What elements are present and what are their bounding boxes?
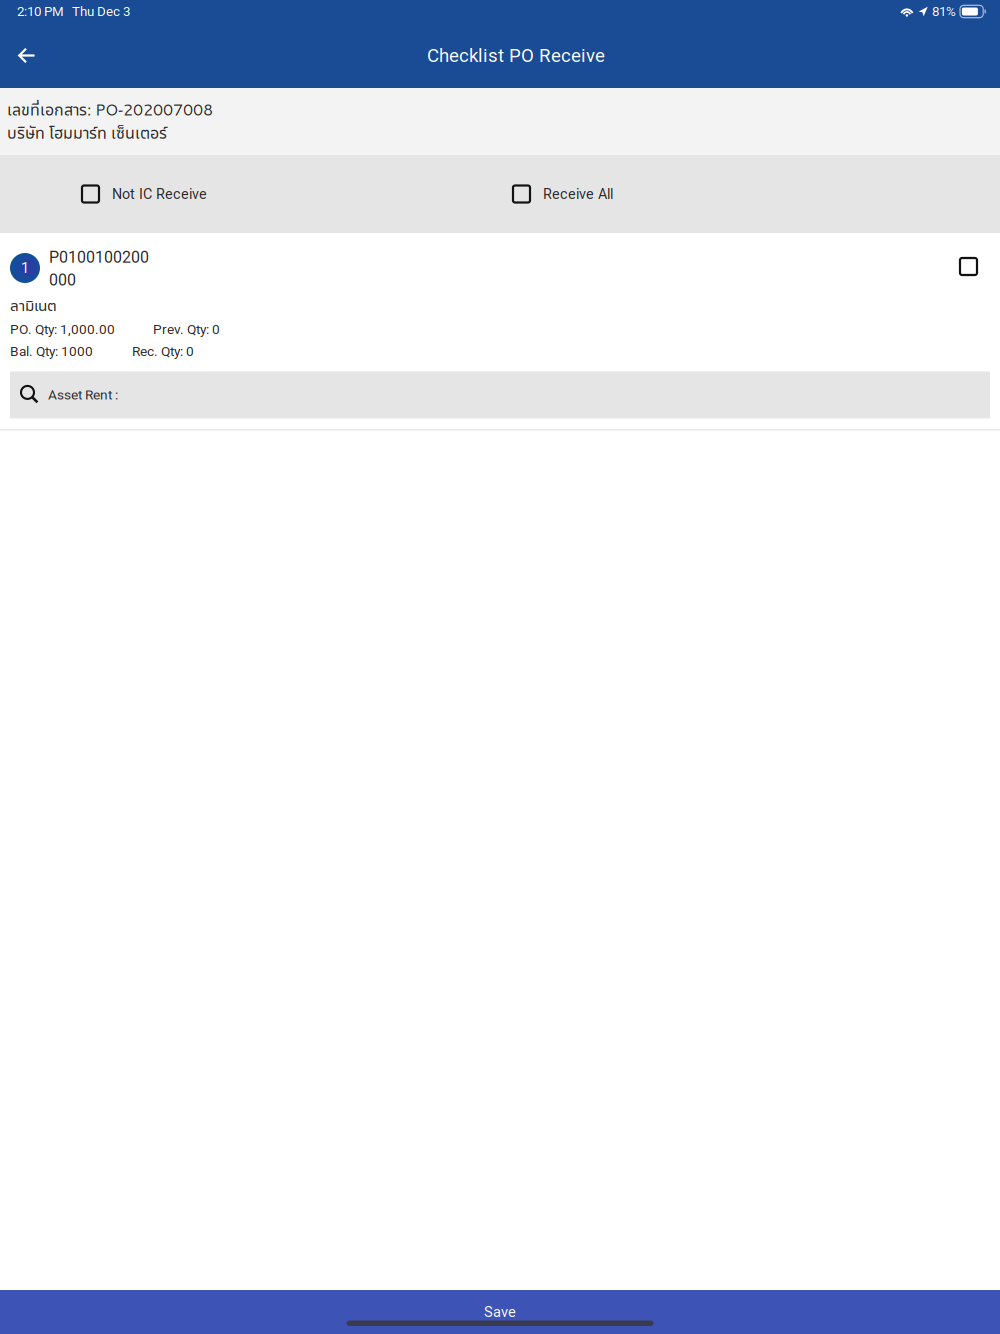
staticText: 81%	[932, 4, 956, 19]
button[interactable]: Receive All	[513, 185, 613, 202]
button[interactable]: Save	[0, 1290, 1000, 1334]
button[interactable]: Not IC Receive	[82, 185, 207, 202]
staticText: บริษัท โฮมมาร์ท เซ็นเตอร์	[7, 122, 167, 143]
staticText: Asset Rent :	[48, 387, 118, 403]
staticText: PO. Qty: 1,000.00	[10, 321, 115, 337]
button[interactable]: Back	[0, 29, 53, 81]
staticText: Checklist PO Receive	[427, 45, 605, 66]
staticText: Prev. Qty: 0	[153, 321, 220, 337]
staticText: 1	[21, 259, 29, 277]
staticText: 2:10 PM	[17, 4, 64, 19]
staticText: Thu Dec 3	[72, 4, 130, 19]
staticText: P0100100200	[49, 248, 149, 267]
staticText: เลขที่เอกสาร: PO-202007008	[7, 98, 213, 121]
staticText: 000	[49, 271, 76, 290]
staticText: Receive All	[543, 186, 613, 202]
staticText: Rec. Qty: 0	[132, 343, 194, 359]
staticText: ลามิเนต	[10, 294, 57, 315]
staticText: Not IC Receive	[112, 186, 207, 202]
button[interactable]: Asset Rent :	[10, 371, 990, 418]
button[interactable]: Select item	[960, 248, 1000, 275]
staticText: Bal. Qty: 1000	[10, 343, 93, 359]
staticText: Save	[484, 1303, 516, 1321]
